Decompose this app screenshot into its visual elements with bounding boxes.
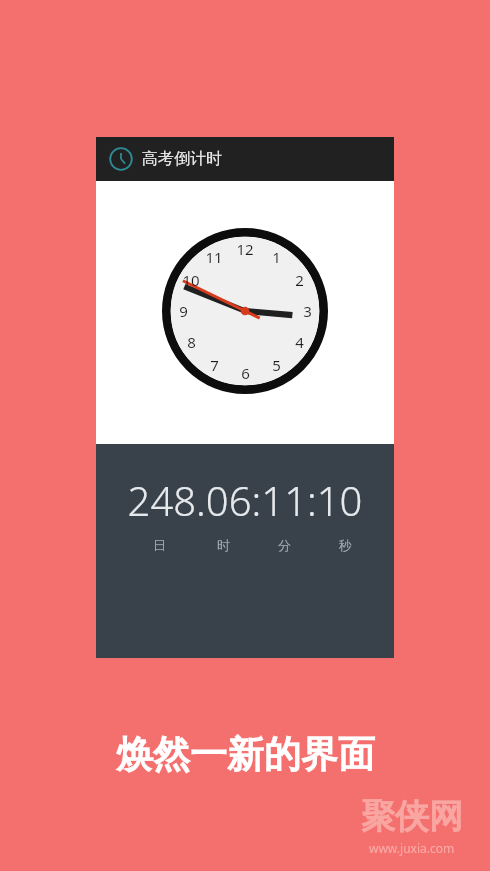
staticText: 12 [236,239,254,259]
staticText: 9 [179,301,188,321]
staticText: 6 [241,363,250,383]
staticText: 11 [205,247,223,267]
staticText: 5 [272,355,281,375]
staticText: 7 [210,355,219,375]
staticText: 分 [278,537,291,553]
staticText: 2 [295,270,304,290]
staticText: 高考倒计时 [142,149,222,169]
staticText: 秒 [339,537,352,553]
staticText: 3 [303,301,312,321]
staticText: 聚侠网 [361,795,463,838]
staticText: www.juxia.com [369,840,455,856]
button[interactable]: Clock [96,137,394,181]
staticText: 10 [182,270,200,290]
staticText: 8 [187,332,196,352]
staticText: 4 [295,332,304,352]
staticText: 248.06:11:10 [96,473,394,527]
other: Clock [109,147,133,171]
staticText: 时 [217,537,230,553]
staticText: 1 [272,247,281,267]
staticText: 焕然一新的界面 [116,731,375,778]
staticText: 日 [153,537,166,553]
